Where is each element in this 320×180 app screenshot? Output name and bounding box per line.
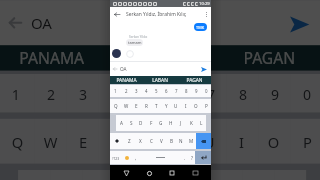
- button[interactable]: G: [156, 115, 166, 131]
- button[interactable]: Space: [139, 151, 181, 164]
- button[interactable]: K: [186, 115, 196, 131]
- button[interactable]: Profile photo: [112, 49, 121, 58]
- button[interactable]: Y: [162, 119, 194, 164]
- button[interactable]: L: [196, 115, 206, 131]
- button[interactable]: .: [181, 151, 188, 164]
- button[interactable]: W: [121, 99, 131, 113]
- button[interactable]: S: [126, 115, 136, 131]
- button[interactable]: R: [98, 119, 130, 164]
- button[interactable]: N: [176, 133, 186, 149]
- button[interactable]: ?: [188, 151, 195, 164]
- button[interactable]: 0: [290, 74, 320, 112]
- button[interactable]: 6: [161, 85, 171, 97]
- button[interactable]: 2: [121, 85, 131, 97]
- staticText: O: [194, 103, 198, 109]
- button[interactable]: 5: [130, 74, 162, 112]
- button[interactable]: I: [226, 119, 258, 164]
- button[interactable]: C: [146, 133, 156, 149]
- button[interactable]: Send: [198, 64, 209, 75]
- button[interactable]: 9: [191, 85, 201, 97]
- button[interactable]: 2: [34, 74, 66, 112]
- button[interactable]: Open actions: [2, 10, 28, 36]
- button[interactable]: T: [151, 99, 161, 113]
- button[interactable]: Back: [110, 7, 123, 22]
- button[interactable]: 3: [66, 74, 98, 112]
- button[interactable]: Enter: [195, 151, 211, 164]
- button[interactable]: Open actions: [111, 65, 119, 73]
- button[interactable]: ,: [132, 151, 139, 164]
- button[interactable]: ?123: [110, 151, 122, 164]
- button[interactable]: D: [82, 170, 114, 180]
- button[interactable]: U: [171, 99, 181, 113]
- button[interactable]: Hide keyboard: [188, 166, 202, 180]
- button[interactable]: 4: [98, 74, 130, 112]
- staticText: 10:29: [199, 1, 210, 7]
- button[interactable]: PAGAN: [213, 45, 320, 71]
- button[interactable]: J: [176, 115, 186, 131]
- button[interactable]: I: [181, 99, 191, 113]
- button[interactable]: M: [186, 133, 196, 149]
- button[interactable]: 8: [181, 85, 191, 97]
- button[interactable]: Backspace: [196, 133, 211, 149]
- button[interactable]: Y: [161, 99, 171, 113]
- button[interactable]: B: [166, 133, 176, 149]
- button[interactable]: PANAMA: [110, 76, 143, 84]
- button[interactable]: F: [146, 115, 156, 131]
- button[interactable]: G: [146, 170, 178, 180]
- button[interactable]: W: [34, 119, 66, 164]
- button[interactable]: 0: [201, 85, 211, 97]
- button[interactable]: T: [130, 119, 162, 164]
- button[interactable]: Emoji: [122, 151, 132, 164]
- button[interactable]: J: [210, 170, 242, 180]
- button[interactable]: PAGAN: [177, 76, 211, 84]
- button[interactable]: E: [131, 99, 141, 113]
- button[interactable]: P: [290, 119, 320, 164]
- staticText: K: [190, 120, 193, 126]
- button[interactable]: 7: [171, 85, 181, 97]
- button[interactable]: Recent apps: [165, 166, 179, 180]
- button[interactable]: 5: [151, 85, 161, 97]
- button[interactable]: H: [166, 115, 176, 131]
- button[interactable]: 8: [226, 74, 258, 112]
- button[interactable]: LABAN: [104, 45, 213, 71]
- button[interactable]: O: [191, 99, 201, 113]
- button[interactable]: V: [156, 133, 166, 149]
- staticText: PAGAN: [242, 48, 296, 71]
- button[interactable]: U: [194, 119, 226, 164]
- button[interactable]: X: [135, 133, 146, 149]
- button[interactable]: Q: [110, 99, 121, 113]
- button[interactable]: Back: [119, 166, 133, 180]
- button[interactable]: More options: [201, 7, 211, 22]
- button[interactable]: PANAMA: [0, 45, 104, 71]
- button[interactable]: Q: [0, 119, 34, 164]
- staticText: O: [268, 132, 280, 151]
- button[interactable]: TMK: [194, 23, 207, 31]
- staticText: 0: [205, 88, 208, 94]
- button[interactable]: 1: [110, 85, 121, 97]
- button[interactable]: 9: [258, 74, 290, 112]
- staticText: T: [143, 132, 152, 151]
- button[interactable]: Home: [142, 166, 156, 180]
- button[interactable]: E: [66, 119, 98, 164]
- button[interactable]: P: [201, 99, 211, 113]
- button[interactable]: F: [114, 170, 146, 180]
- button[interactable]: tamam: [126, 39, 143, 46]
- button[interactable]: 3: [131, 85, 141, 97]
- button[interactable]: 7: [194, 74, 226, 112]
- button[interactable]: Shift: [110, 133, 124, 149]
- button[interactable]: A: [116, 115, 126, 131]
- button[interactable]: Z: [124, 133, 135, 149]
- button[interactable]: O: [258, 119, 290, 164]
- button[interactable]: Send: [280, 7, 316, 42]
- button[interactable]: H: [178, 170, 210, 180]
- button[interactable]: 6: [162, 74, 194, 112]
- button[interactable]: 1: [0, 74, 34, 112]
- button[interactable]: 4: [141, 85, 151, 97]
- button[interactable]: LABAN: [143, 76, 177, 84]
- button[interactable]: D: [136, 115, 146, 131]
- button[interactable]: R: [141, 99, 151, 113]
